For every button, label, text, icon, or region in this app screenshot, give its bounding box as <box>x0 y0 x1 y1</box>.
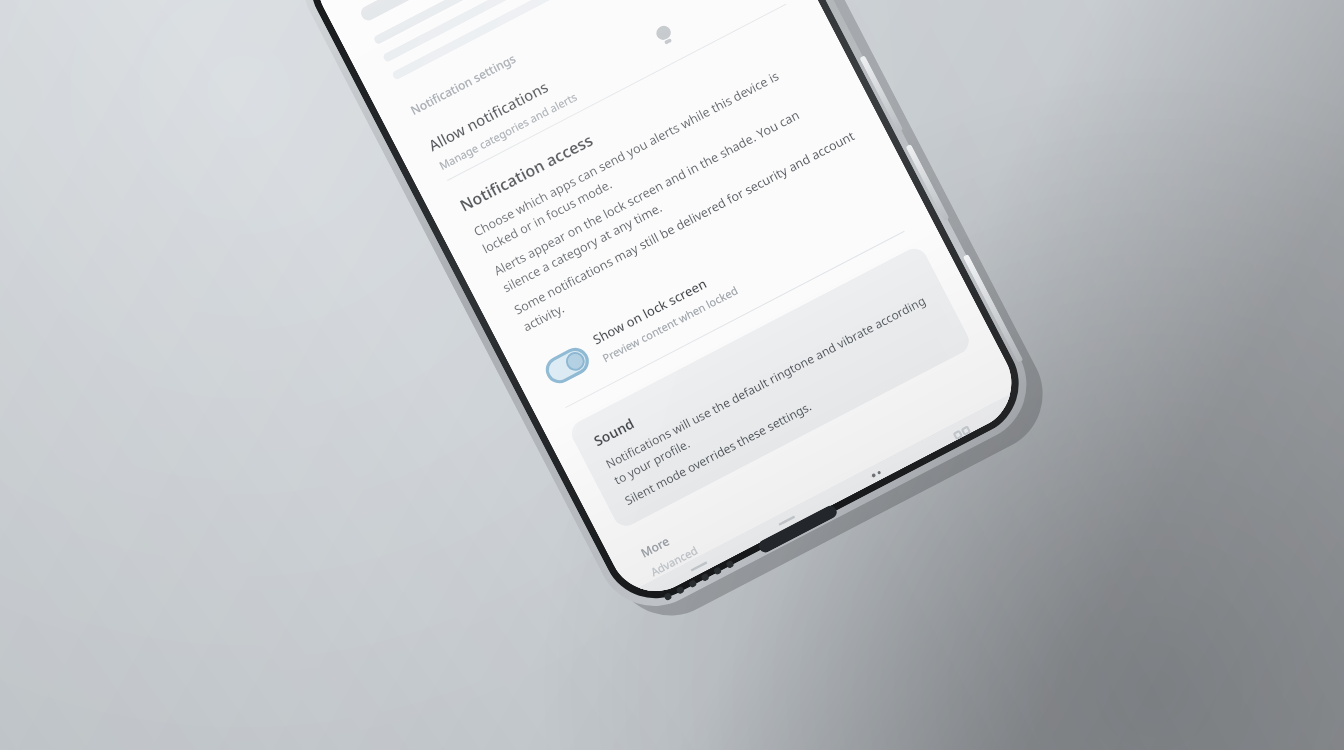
staticText: More <box>638 532 673 561</box>
button[interactable]: Show on lock screen toggle <box>509 159 927 414</box>
button[interactable]: Allow notifications <box>395 0 812 194</box>
staticText: Silent mode overrides these settings. <box>622 397 814 508</box>
other: Notification icon <box>647 18 682 53</box>
staticText: Advanced <box>648 542 700 579</box>
staticText: Preview content when locked <box>600 282 741 365</box>
staticText: Manage categories and alerts <box>436 88 580 173</box>
staticText: Allow notifications <box>425 76 552 155</box>
staticText: Notifications will use the default ringt… <box>603 290 940 489</box>
button[interactable]: Home <box>669 546 727 586</box>
button[interactable]: Show on lock screen toggle <box>543 345 591 386</box>
staticText: Notification settings <box>407 50 519 118</box>
button[interactable]: Notification settings <box>381 0 780 132</box>
staticText: Choose which apps can send you alerts wh… <box>471 49 826 257</box>
button[interactable]: Apps <box>934 411 987 448</box>
staticText: Alerts appear on the lock screen and in … <box>491 88 846 296</box>
button[interactable]: Chat <box>761 502 812 538</box>
button[interactable]: Sound <box>567 244 974 531</box>
staticText: Show on lock screen <box>590 274 710 348</box>
staticText: Sound <box>590 414 637 450</box>
button[interactable]: Alert <box>847 456 900 494</box>
staticText: Some notifications may still be delivere… <box>511 127 867 335</box>
staticText: Notification access <box>456 129 597 216</box>
